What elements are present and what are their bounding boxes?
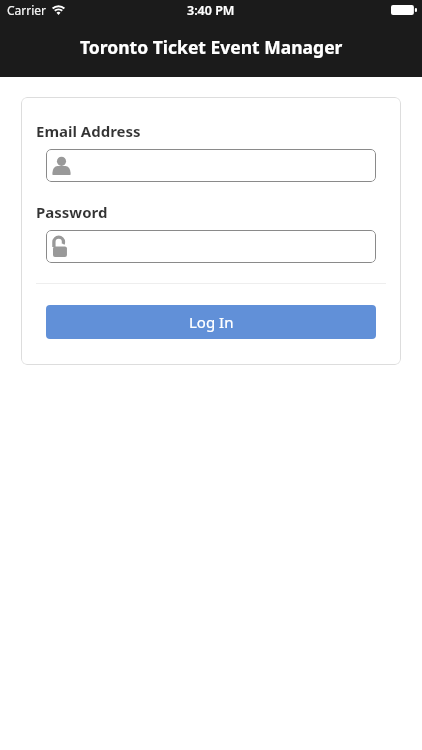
staticText: Toronto Ticket Event Manager bbox=[80, 35, 343, 59]
staticText: Password bbox=[36, 202, 108, 222]
button[interactable] bbox=[46, 230, 376, 263]
button[interactable] bbox=[46, 149, 376, 182]
staticText: Email Address bbox=[36, 121, 141, 141]
staticText: Carrier bbox=[7, 2, 47, 18]
staticText: 3:40 PM bbox=[187, 2, 235, 19]
staticText: Log In bbox=[189, 312, 234, 332]
button[interactable]: Log In bbox=[46, 305, 376, 339]
